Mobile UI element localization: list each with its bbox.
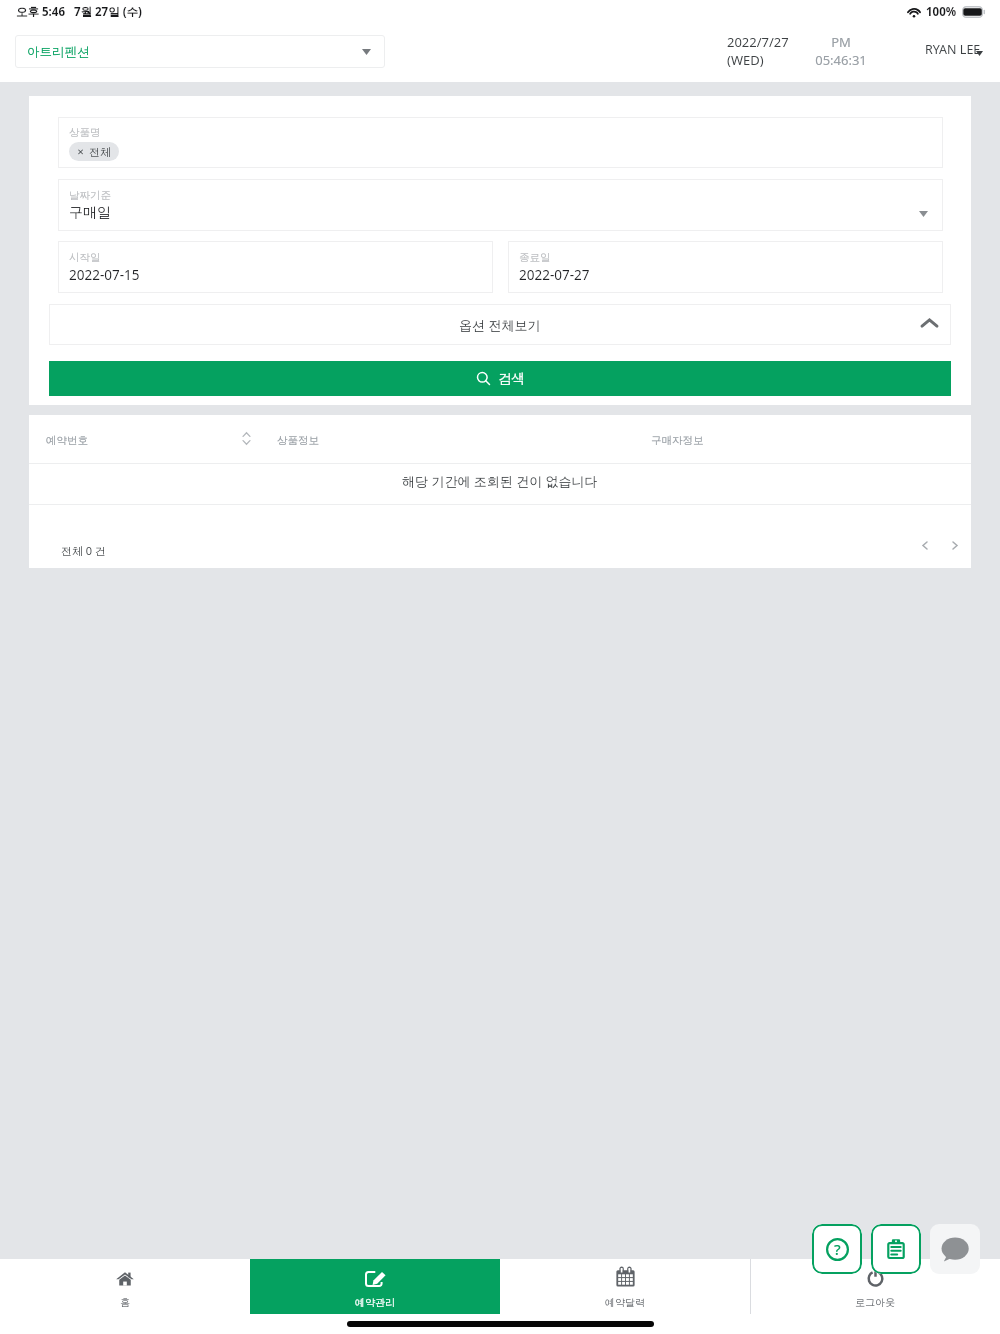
- staticText: 로그아웃: [855, 1296, 895, 1309]
- staticText: 아트리펜션: [27, 44, 90, 60]
- staticText: PM: [831, 33, 851, 51]
- button[interactable]: 홈: [0, 1259, 250, 1314]
- button[interactable]: 아트리펜션: [15, 35, 385, 68]
- staticText: 예약번호: [46, 434, 88, 447]
- staticText: RYAN LEE: [925, 41, 981, 58]
- staticText: ✕: [77, 147, 85, 157]
- staticText: 시작일: [69, 251, 101, 264]
- button[interactable]: Sort by reservation number: [242, 432, 252, 446]
- button[interactable]: Chat: [930, 1224, 980, 1274]
- staticText: 전체 0 건: [61, 543, 107, 558]
- staticText: 종료일: [519, 251, 551, 264]
- staticText: 검색: [498, 370, 525, 387]
- staticText: 예약달력: [605, 1296, 645, 1309]
- button[interactable]: Next page: [942, 533, 967, 558]
- button[interactable]: 상품명: [58, 117, 943, 168]
- button[interactable]: Notice: [871, 1224, 921, 1274]
- staticText: 옵션 전체보기: [459, 316, 541, 334]
- button[interactable]: 예약달력: [500, 1259, 750, 1314]
- staticText: 날짜기준: [69, 189, 111, 202]
- button[interactable]: Previous page: [912, 533, 937, 558]
- staticText: 상품정보: [277, 434, 319, 447]
- staticText: (WED): [727, 51, 764, 69]
- button[interactable]: 시작일: [58, 241, 493, 293]
- button[interactable]: 예약관리: [250, 1259, 500, 1314]
- staticText: 구매일: [69, 204, 111, 222]
- button[interactable]: 옵션 전체보기: [49, 304, 951, 345]
- staticText: 2022/7/27: [727, 33, 789, 51]
- button[interactable]: RYAN LEE: [925, 41, 988, 58]
- staticText: ?: [834, 1239, 841, 1259]
- staticText: 2022-07-15: [69, 266, 140, 284]
- staticText: 홈: [120, 1296, 130, 1309]
- staticText: 해당 기간에 조회된 건이 없습니다: [402, 472, 598, 490]
- button[interactable]: 검색: [49, 361, 951, 396]
- staticText: 100%: [926, 4, 957, 20]
- button[interactable]: 로그아웃: [750, 1259, 1000, 1314]
- staticText: 상품명: [69, 126, 101, 139]
- staticText: 05:46:31: [815, 51, 867, 69]
- staticText: 예약관리: [355, 1296, 395, 1309]
- staticText: 2022-07-27: [519, 266, 590, 284]
- button[interactable]: 날짜기준: [58, 179, 943, 231]
- staticText: 전체: [89, 145, 111, 159]
- staticText: 구매자정보: [651, 434, 704, 447]
- button[interactable]: 종료일: [508, 241, 943, 293]
- staticText: 오후 5:46 7월 27일 (수): [16, 4, 142, 20]
- button[interactable]: Help: [812, 1224, 862, 1274]
